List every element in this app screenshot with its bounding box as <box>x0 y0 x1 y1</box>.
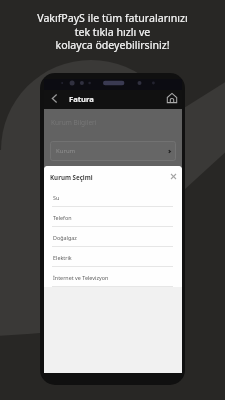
staticText: Telefon <box>53 214 72 221</box>
staticText: Kurum <box>56 147 76 155</box>
button[interactable]: Telefon <box>44 207 182 227</box>
button[interactable]: Elektrik <box>44 247 182 267</box>
staticText: Doğalgaz <box>53 234 77 241</box>
button[interactable]: Back <box>48 92 60 104</box>
button[interactable]: Doğalgaz <box>44 227 182 247</box>
button[interactable]: Home <box>165 91 179 105</box>
button[interactable]: Close <box>168 171 179 182</box>
staticText: Kurum Bilgileri <box>51 118 97 127</box>
staticText: İnternet ve Televizyon <box>53 274 109 281</box>
staticText: Fatura <box>69 94 94 104</box>
button[interactable]: İnternet ve Televizyon <box>44 267 182 287</box>
staticText: VakıfPayS ile tüm faturalarınızı tek tık… <box>0 11 225 52</box>
staticText: Kurum Seçimi <box>50 173 93 181</box>
staticText: Elektrik <box>53 254 72 261</box>
button[interactable]: Kurum <box>50 141 176 161</box>
staticText: Su <box>53 194 60 201</box>
button[interactable]: Su <box>44 187 182 207</box>
